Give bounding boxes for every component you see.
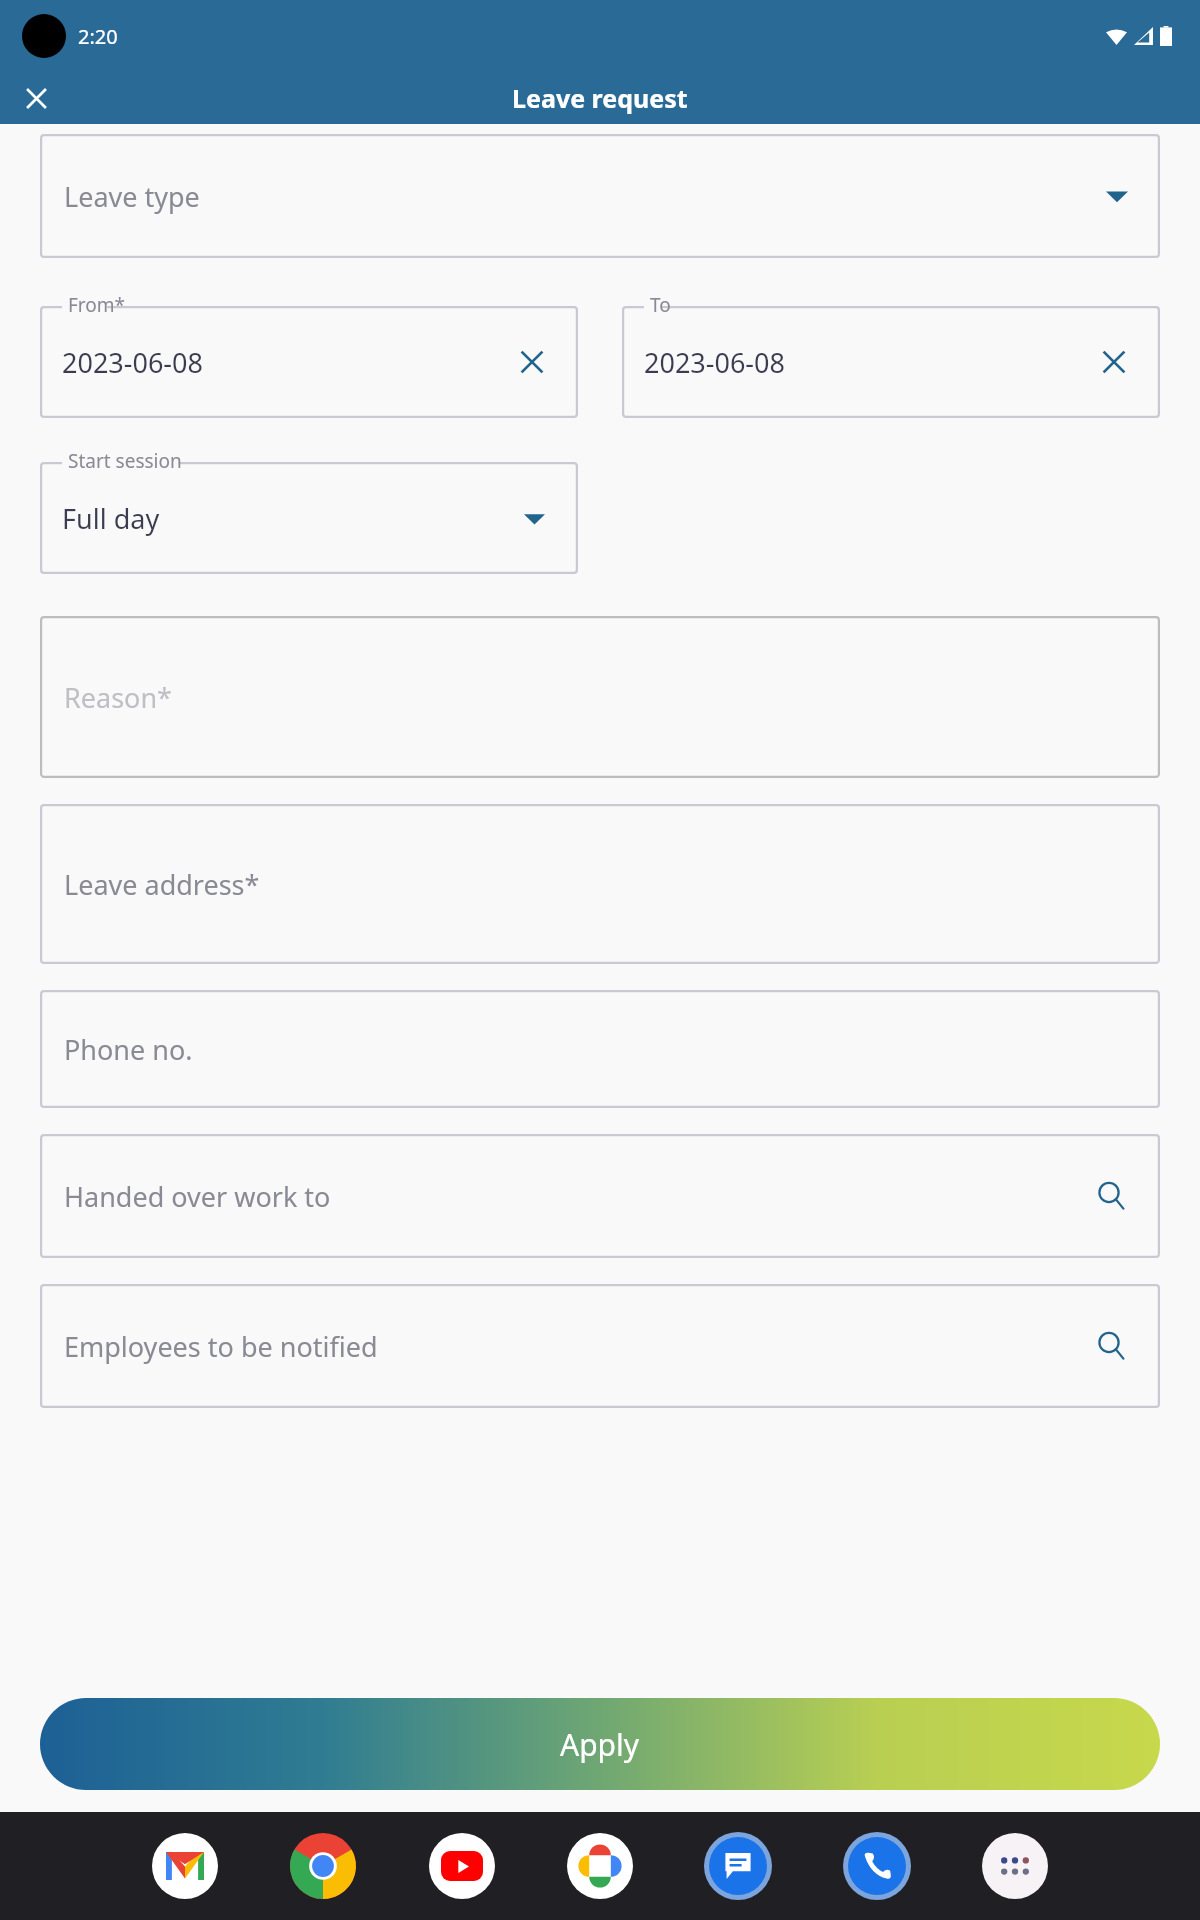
staticText: To: [650, 292, 671, 318]
staticText: Leave request: [512, 81, 688, 115]
staticText: Full day: [62, 500, 160, 537]
button[interactable]: Search employee: [1090, 1174, 1134, 1218]
button[interactable]: Handed over work to: [40, 1134, 1160, 1258]
staticText: From*: [68, 292, 126, 318]
staticText: Start session: [68, 448, 182, 474]
button[interactable]: Reason*: [40, 616, 1160, 778]
staticText: Handed over work to: [64, 1178, 331, 1215]
button[interactable]: Clear to date: [1094, 342, 1134, 382]
button[interactable]: Close: [14, 76, 58, 120]
button[interactable]: Leave type: [40, 134, 1160, 258]
button[interactable]: Gmail: [150, 1831, 220, 1901]
button[interactable]: Clear from date: [512, 342, 552, 382]
button[interactable]: From*: [40, 292, 578, 418]
staticText: 2023-06-08: [644, 344, 785, 381]
staticText: 2:20: [78, 23, 118, 50]
button[interactable]: Search employees: [1090, 1324, 1134, 1368]
button[interactable]: Photos: [565, 1831, 635, 1901]
button[interactable]: All apps: [980, 1831, 1050, 1901]
staticText: Apply: [560, 1724, 640, 1765]
staticText: Leave type: [64, 178, 200, 215]
staticText: Phone no.: [64, 1031, 193, 1068]
button[interactable]: Phone no.: [40, 990, 1160, 1108]
staticText: Employees to be notified: [64, 1328, 378, 1365]
button[interactable]: To: [622, 292, 1160, 418]
button[interactable]: YouTube: [427, 1831, 497, 1901]
button[interactable]: Phone: [842, 1831, 912, 1901]
button[interactable]: Employees to be notified: [40, 1284, 1160, 1408]
button[interactable]: Start session: [40, 448, 578, 574]
button[interactable]: Messages: [703, 1831, 773, 1901]
button[interactable]: Chrome: [288, 1831, 358, 1901]
staticText: 2023-06-08: [62, 344, 203, 381]
staticText: Reason*: [64, 679, 172, 716]
staticText: Leave address*: [64, 866, 260, 903]
button[interactable]: Leave address*: [40, 804, 1160, 964]
button[interactable]: Apply: [40, 1698, 1160, 1790]
